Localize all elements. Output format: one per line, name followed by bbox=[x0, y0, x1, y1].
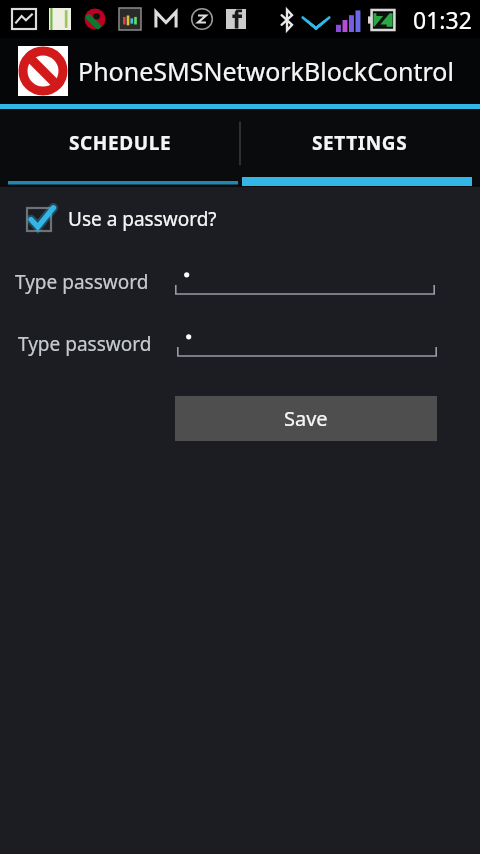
button[interactable] bbox=[175, 262, 435, 302]
staticText: Type password bbox=[15, 269, 149, 295]
staticText: 01:32 bbox=[413, 4, 472, 35]
staticText: Save bbox=[284, 405, 328, 432]
button[interactable]: Use a password? bbox=[26, 205, 217, 233]
button[interactable]: SCHEDULE bbox=[0, 109, 240, 187]
staticText: SCHEDULE bbox=[69, 130, 172, 156]
button[interactable]: SETTINGS bbox=[240, 109, 480, 187]
button[interactable]: Save bbox=[175, 396, 437, 441]
staticText: Type password bbox=[18, 331, 152, 357]
staticText: PhoneSMSNetworkBlockControl bbox=[78, 54, 454, 88]
staticText: SETTINGS bbox=[312, 130, 408, 156]
staticText: Use a password? bbox=[68, 206, 217, 232]
button[interactable] bbox=[177, 324, 437, 364]
